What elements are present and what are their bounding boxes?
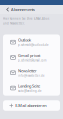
staticText: Landing Seite: [18, 83, 40, 89]
button[interactable]: Gmail privat: [3, 50, 60, 65]
button[interactable]: Zurück: [0, 5, 11, 14]
staticText: Outlook: [18, 37, 31, 43]
staticText: auto@landing.de: [18, 89, 42, 93]
staticText: info@newsletter.de: [18, 74, 45, 77]
staticText: und Newsletter.: [3, 22, 25, 25]
staticText: p.schmidt@outlook.de: [18, 43, 49, 47]
staticText: Abonnements: [11, 7, 35, 12]
button[interactable]: E-Mail abonnieren: [3, 100, 60, 111]
button[interactable]: Newsletter: [3, 65, 60, 80]
staticText: Gmail privat: [18, 53, 40, 58]
button[interactable]: Outlook: [3, 34, 60, 50]
staticText: p.schmidt@gmail.com: [18, 59, 46, 62]
button[interactable]: Landing Seite: [3, 80, 60, 96]
staticText: E-Mail abonnieren: [15, 103, 46, 108]
staticText: Hier können Sie Ihre E-Mail-Abos: [3, 17, 49, 20]
staticText: Newsletter: [18, 68, 37, 73]
